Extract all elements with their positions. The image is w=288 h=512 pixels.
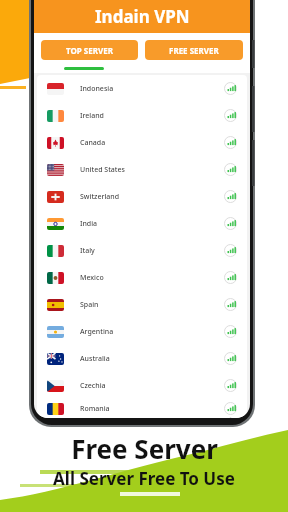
other: Signal strength (224, 82, 237, 95)
other: Signal strength (224, 325, 237, 338)
staticText: Romania (80, 404, 110, 414)
staticText: United States (80, 165, 125, 175)
other: Signal strength (224, 298, 237, 311)
staticText: All Server Free To Use (53, 467, 235, 490)
staticText: Free Server (71, 431, 218, 466)
other: Signal strength (224, 402, 237, 415)
other: Signal strength (224, 379, 237, 392)
other: Signal strength (224, 244, 237, 257)
button[interactable]: United States (37, 156, 247, 183)
button[interactable]: Spain (37, 291, 247, 318)
other: Signal strength (224, 352, 237, 365)
staticText: India (80, 219, 98, 229)
other: Signal strength (224, 136, 237, 149)
button[interactable]: Indonesia (37, 75, 247, 102)
button[interactable]: Australia (37, 345, 247, 372)
staticText: Indain VPN (95, 5, 190, 28)
staticText: Mexico (80, 273, 104, 283)
button[interactable]: Switzerland (37, 183, 247, 210)
button[interactable]: Canada (37, 129, 247, 156)
button[interactable]: Mexico (37, 264, 247, 291)
other: Signal strength (224, 190, 237, 203)
staticText: Italy (80, 246, 95, 256)
button[interactable]: Italy (37, 237, 247, 264)
staticText: FREE SERVER (169, 45, 219, 56)
staticText: Canada (80, 138, 106, 148)
button[interactable]: TOP SERVER (41, 40, 138, 60)
button[interactable]: Czechia (37, 372, 247, 399)
staticText: Australia (80, 354, 110, 364)
button[interactable]: Ireland (37, 102, 247, 129)
button[interactable]: India (37, 210, 247, 237)
staticText: Spain (80, 300, 99, 310)
staticText: Czechia (80, 381, 106, 391)
button[interactable]: Romania (37, 399, 247, 418)
staticText: Switzerland (80, 192, 120, 202)
staticText: Ireland (80, 111, 104, 121)
staticText: Argentina (80, 327, 114, 337)
other: Signal strength (224, 217, 237, 230)
staticText: Indonesia (80, 84, 114, 94)
button[interactable]: Argentina (37, 318, 247, 345)
other: Signal strength (224, 271, 237, 284)
button[interactable]: FREE SERVER (145, 40, 243, 60)
other: Signal strength (224, 163, 237, 176)
other: Signal strength (224, 109, 237, 122)
staticText: TOP SERVER (66, 45, 113, 56)
